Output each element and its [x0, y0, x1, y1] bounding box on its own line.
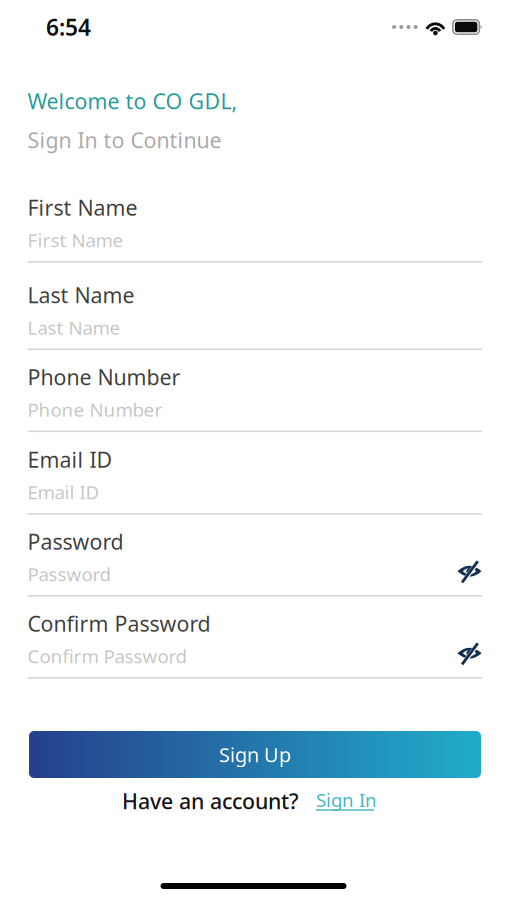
staticText: Phone Number [27, 397, 162, 422]
staticText: Welcome to CO GDL, [27, 87, 237, 115]
staticText: Password [27, 527, 123, 556]
staticText: Email ID [27, 480, 99, 504]
button[interactable]: Sign In [316, 791, 380, 811]
staticText: First Name [27, 193, 137, 222]
staticText: Phone Number [27, 363, 180, 391]
staticText: 6:54 [46, 12, 91, 42]
staticText: Sign In to Continue [27, 126, 221, 154]
staticText: First Name [27, 228, 123, 252]
staticText: Sign In [316, 787, 377, 812]
staticText: Sign Up [219, 741, 291, 768]
button[interactable]: Show Confirm Password [448, 643, 482, 669]
staticText: Last Name [27, 315, 120, 340]
staticText: Have an account? [122, 787, 299, 815]
button[interactable]: Sign Up [29, 731, 481, 778]
staticText: Confirm Password [27, 644, 186, 668]
staticText: Email ID [27, 445, 112, 474]
staticText: Last Name [27, 281, 134, 309]
staticText: Password [27, 562, 110, 586]
button[interactable]: Show Password [448, 561, 482, 587]
staticText: Confirm Password [27, 609, 210, 638]
